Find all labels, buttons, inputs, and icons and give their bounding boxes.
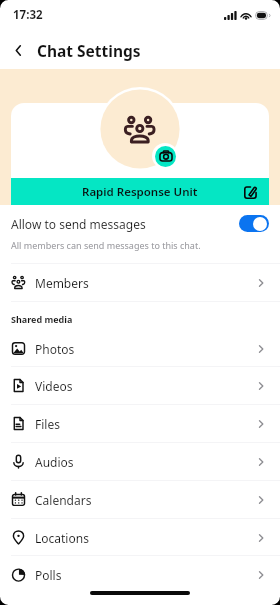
button[interactable]: Edit name	[240, 182, 260, 202]
staticText: 17:32	[13, 7, 43, 23]
button[interactable]: Members	[0, 264, 280, 301]
button[interactable]: Back	[5, 37, 31, 63]
staticText: Polls	[35, 567, 62, 583]
staticText: Audios	[35, 454, 74, 470]
button[interactable]: Photos	[0, 330, 280, 367]
staticText: Photos	[35, 341, 75, 357]
staticText: Shared media	[11, 313, 73, 325]
staticText: Members	[35, 275, 89, 291]
button[interactable]: Allow to send messages	[239, 215, 269, 232]
staticText: Files	[35, 416, 60, 432]
button[interactable]: Audios	[0, 443, 280, 480]
staticText: Allow to send messages	[11, 216, 146, 232]
button[interactable]: Change group photo	[155, 146, 176, 167]
button[interactable]: Calendars	[0, 481, 280, 518]
button[interactable]: Allow to send messages	[0, 205, 280, 263]
staticText: Chat Settings	[37, 40, 141, 61]
button[interactable]: Videos	[0, 367, 280, 404]
button[interactable]: Locations	[0, 519, 280, 556]
button[interactable]: Polls	[0, 556, 280, 593]
staticText: Rapid Response Unit	[82, 184, 198, 200]
staticText: Locations	[35, 530, 89, 546]
staticText: Videos	[35, 378, 73, 394]
button[interactable]: Files	[0, 405, 280, 442]
staticText: All members can send messages to this ch…	[11, 239, 201, 251]
button[interactable]: Rapid Response Unit	[11, 178, 269, 205]
staticText: Calendars	[35, 492, 92, 508]
